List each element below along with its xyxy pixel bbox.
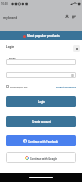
staticText: Email [9,56,16,59]
button[interactable]: Close [73,45,80,52]
staticText: 10:30 [1,2,8,6]
staticText: Most popular products [27,34,60,38]
button[interactable]: Home [3,14,17,22]
button[interactable] [6,72,76,78]
staticText: Continue with Google [30,157,58,160]
button[interactable]: Login [6,96,76,107]
button[interactable]: Forgot password [56,85,76,88]
staticText: Password [9,70,21,73]
button[interactable]: Continue with Facebook [6,135,76,146]
button[interactable]: Create account [6,116,76,127]
button[interactable]: Account [63,13,71,21]
button[interactable]: Remember me [6,85,28,88]
staticText: Login [6,45,15,49]
button[interactable] [6,59,76,65]
button[interactable]: Menu [70,13,78,21]
staticText: Remember me [10,85,28,88]
staticText: Create account [32,120,51,123]
staticText: Continue with Facebook [28,140,59,143]
staticText: mybrand [3,16,17,20]
button[interactable]: Continue with Google [6,152,76,163]
staticText: Login [38,100,45,103]
